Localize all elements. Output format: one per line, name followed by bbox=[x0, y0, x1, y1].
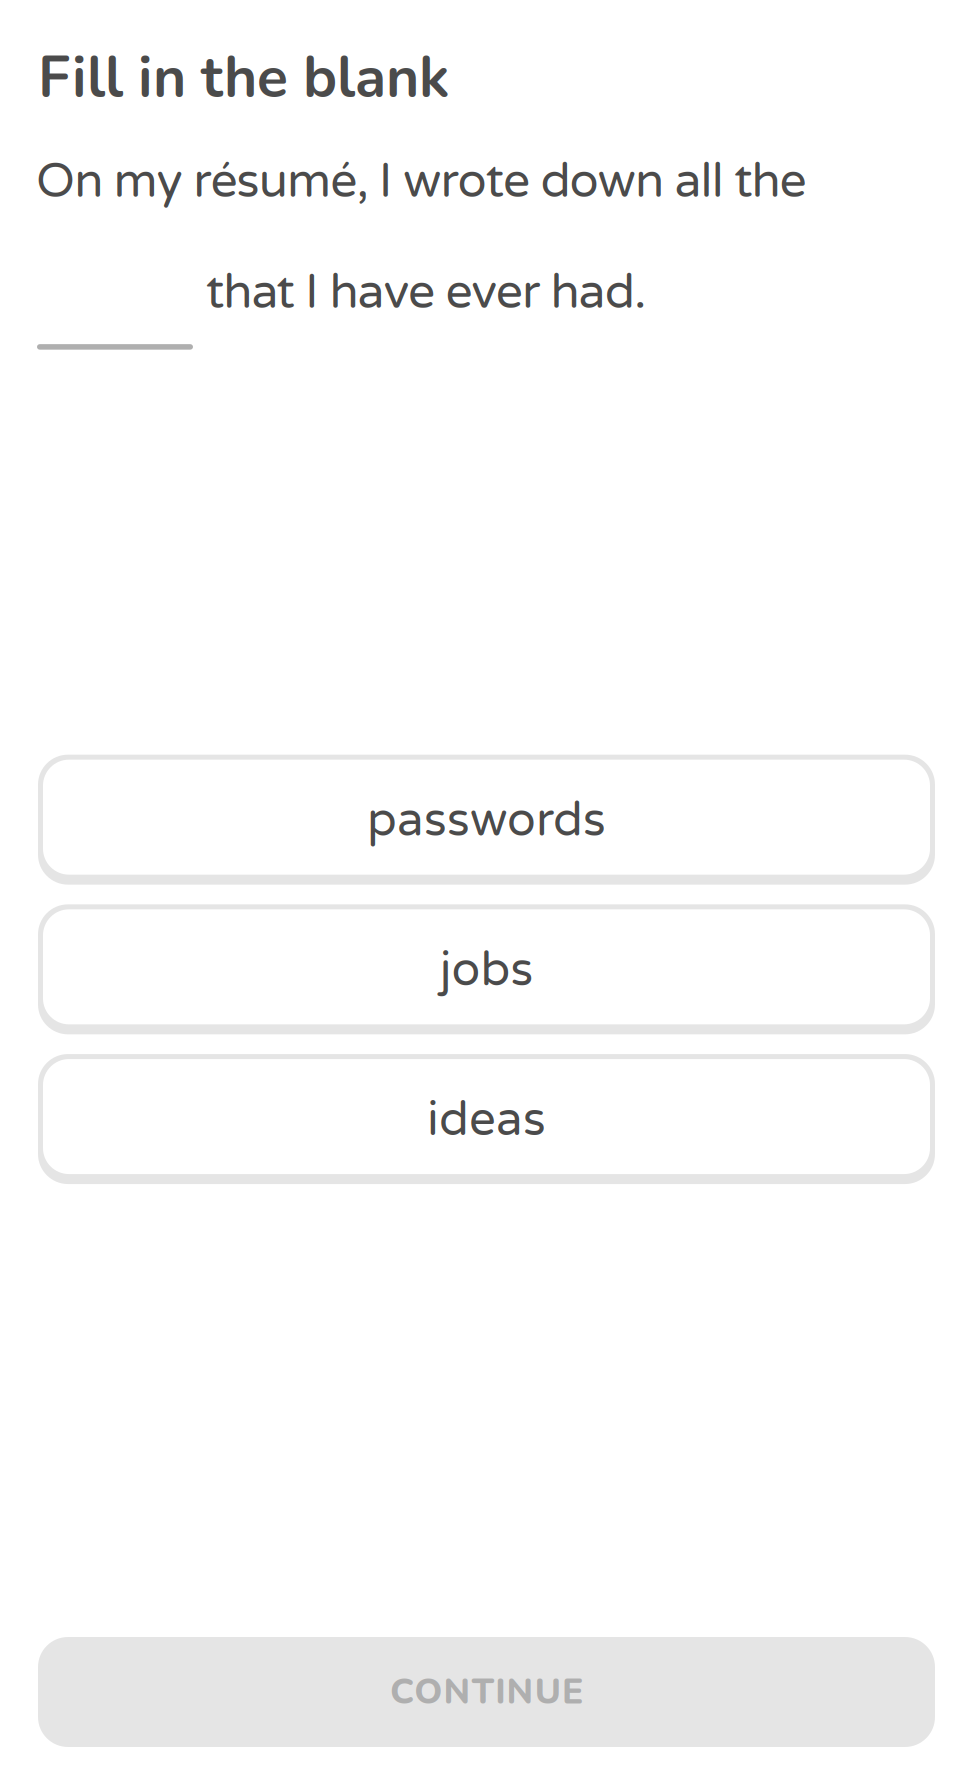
staticText: ideas bbox=[427, 1092, 546, 1149]
button[interactable]: passwords bbox=[38, 755, 935, 885]
staticText: that I have ever had. bbox=[206, 264, 646, 321]
staticText: On my résumé, I wrote down all the bbox=[36, 153, 807, 210]
staticText: passwords bbox=[367, 792, 606, 849]
button[interactable]: jobs bbox=[38, 904, 935, 1034]
staticText: Fill in the blank bbox=[38, 39, 450, 117]
staticText: jobs bbox=[439, 942, 533, 999]
button[interactable]: CONTINUE bbox=[38, 1637, 935, 1747]
button[interactable]: ideas bbox=[38, 1054, 935, 1184]
staticText: CONTINUE bbox=[390, 1668, 583, 1716]
